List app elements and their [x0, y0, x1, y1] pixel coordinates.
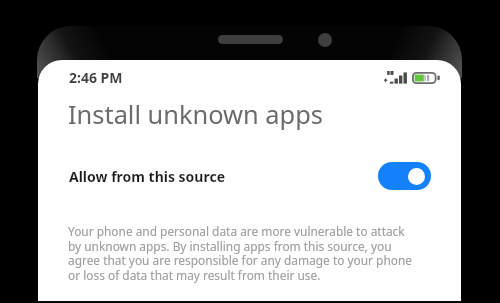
- staticText: 2:46 PM: [69, 68, 123, 87]
- staticText: Your phone and personal data are more vu…: [68, 223, 405, 239]
- button[interactable]: Allow from this source: [38, 154, 461, 198]
- staticText: Allow from this source: [69, 167, 226, 186]
- staticText: or loss of data that may result from the…: [68, 267, 321, 283]
- staticText: by unknown apps. By installing apps from…: [68, 238, 392, 254]
- staticText: Install unknown apps: [68, 97, 323, 132]
- button[interactable]: Allow from this source toggle: [378, 162, 431, 190]
- staticText: agree that you are responsible for any d…: [68, 252, 413, 268]
